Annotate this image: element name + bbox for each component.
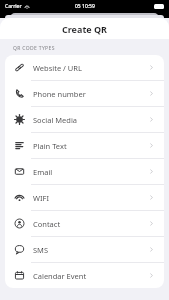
staticText: Contact (33, 219, 148, 229)
other: Open (148, 90, 155, 97)
other: Open (148, 220, 155, 227)
staticText: Carrier (5, 3, 22, 10)
other: Open (148, 116, 155, 123)
other: WIFI (14, 192, 25, 203)
staticText: Website / URL (33, 63, 148, 73)
staticText: Create QR (62, 23, 108, 35)
other: Plain Text (14, 140, 25, 151)
button[interactable]: Social Media (5, 107, 164, 132)
staticText: WIFI (33, 193, 148, 203)
other: Open (148, 142, 155, 149)
button[interactable]: Plain Text (5, 133, 164, 158)
other: Open (148, 64, 155, 71)
staticText: 05 10:59 (75, 3, 95, 10)
other: Contact (14, 218, 25, 229)
button[interactable]: Phone number (5, 81, 164, 106)
staticText: QR CODE TYPES (13, 45, 55, 52)
button[interactable]: Email (5, 159, 164, 184)
button[interactable]: Calendar Event (5, 263, 164, 288)
button[interactable]: Website / URL (5, 55, 164, 80)
button[interactable]: Contact (5, 211, 164, 236)
staticText: Email (33, 167, 148, 177)
other: Open (148, 246, 155, 253)
other: Open (148, 168, 155, 175)
staticText: Plain Text (33, 141, 148, 151)
other: Social Media (14, 114, 25, 125)
button[interactable]: SMS (5, 237, 164, 262)
other: Email (14, 166, 25, 177)
other: Phone number (14, 88, 25, 99)
staticText: Social Media (33, 115, 148, 125)
other: Open (148, 194, 155, 201)
staticText: SMS (33, 245, 148, 255)
staticText: Phone number (33, 89, 148, 99)
staticText: Calendar Event (33, 271, 148, 281)
button[interactable]: WIFI (5, 185, 164, 210)
other: Website / URL (14, 62, 25, 73)
other: Open (148, 272, 155, 279)
other: Calendar Event (14, 270, 25, 281)
other: SMS (14, 244, 25, 255)
